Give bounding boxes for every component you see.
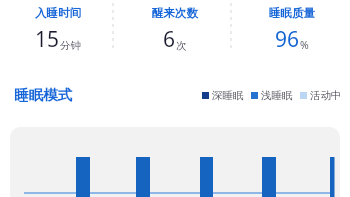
button[interactable]: 浅睡眠 <box>251 89 293 102</box>
staticText: 浅睡眠 <box>261 89 293 102</box>
staticText: 深睡眠 <box>212 89 244 102</box>
button[interactable]: 醒来次数 <box>116 0 233 54</box>
staticText: 分钟 <box>60 39 81 52</box>
button[interactable]: 睡眠模式图表 <box>10 127 340 197</box>
staticText: 睡眠模式 <box>14 86 72 104</box>
staticText: % <box>300 38 309 52</box>
staticText: 6 <box>163 25 176 54</box>
button[interactable]: 入睡时间 <box>0 0 116 54</box>
staticText: 15 <box>35 25 60 54</box>
button[interactable]: 活动中 <box>300 89 342 102</box>
staticText: 醒来次数 <box>152 6 198 20</box>
staticText: 96 <box>275 25 300 54</box>
other: 睡眠模式图表 <box>10 127 340 197</box>
staticText: 次 <box>176 39 187 52</box>
staticText: 活动中 <box>310 89 342 102</box>
staticText: 睡眠质量 <box>269 6 315 20</box>
button[interactable]: 深睡眠 <box>202 89 244 102</box>
staticText: 入睡时间 <box>35 6 81 20</box>
button[interactable]: 睡眠质量 <box>233 0 350 54</box>
